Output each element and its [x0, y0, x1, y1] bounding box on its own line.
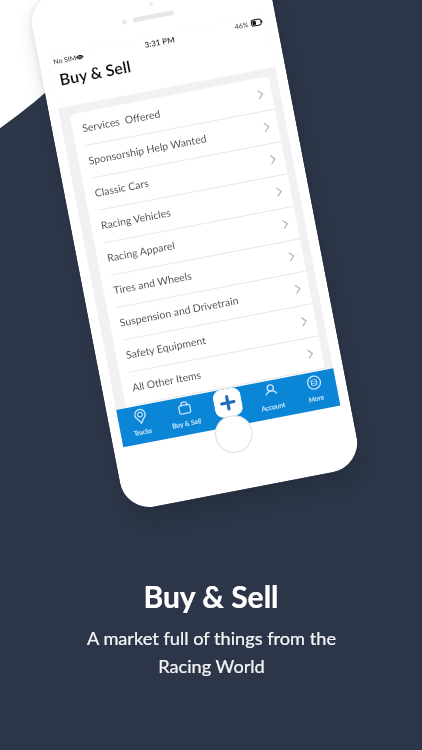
- button[interactable]: Classic Cars: [82, 141, 287, 212]
- button[interactable]: Safety Equipment: [113, 303, 319, 374]
- staticText: Suspension and Drivetrain: [119, 294, 240, 330]
- button[interactable]: Tracks: [116, 401, 168, 447]
- staticText: Buy & Sell: [143, 578, 279, 614]
- button[interactable]: Services Offered: [69, 76, 275, 147]
- staticText: Racing Apparel: [106, 239, 176, 265]
- button[interactable]: Racing Vehicles: [88, 173, 294, 244]
- button[interactable]: Buy & Sell: [160, 393, 211, 439]
- staticText: Classic Cars: [94, 177, 150, 200]
- button[interactable]: Account: [247, 376, 297, 422]
- staticText: Tracks: [133, 426, 153, 437]
- button[interactable]: Suspension and Drivetrain: [107, 271, 312, 341]
- staticText: No SIM: [52, 53, 77, 66]
- staticText: Buy & Sell: [171, 416, 202, 430]
- other: Home: [212, 412, 256, 456]
- staticText: Trailers: [137, 408, 172, 427]
- staticText: Tires and Wheels: [112, 269, 193, 297]
- button[interactable]: Sponsorship Help Wanted: [76, 108, 281, 179]
- staticText: Account: [261, 400, 286, 412]
- staticText: More: [308, 392, 325, 403]
- button[interactable]: Trailers: [126, 368, 331, 439]
- button[interactable]: Racing Apparel: [94, 206, 300, 277]
- button[interactable]: All Other Items: [119, 335, 325, 406]
- staticText: Racing Vehicles: [100, 206, 172, 232]
- staticText: 3:31 PM: [144, 34, 176, 50]
- staticText: Sponsorship Help Wanted: [87, 132, 208, 168]
- button[interactable]: Add new listing: [211, 386, 244, 419]
- staticText: All Other Items: [131, 368, 202, 394]
- staticText: 46%: [234, 20, 249, 31]
- staticText: Services Offered: [81, 107, 162, 135]
- staticText: Safety Equipment: [125, 334, 208, 362]
- staticText: A market full of things from the Racing …: [87, 627, 336, 677]
- button[interactable]: More: [290, 368, 340, 414]
- staticText: Buy & Sell: [58, 56, 133, 89]
- button[interactable]: Tires and Wheels: [101, 238, 306, 309]
